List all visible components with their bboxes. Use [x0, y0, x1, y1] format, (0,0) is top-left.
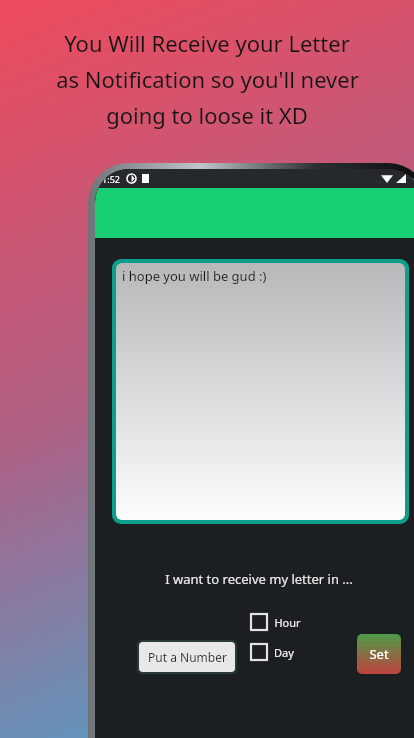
button[interactable]: i hope you will be gud :)	[116, 263, 405, 520]
button[interactable]	[95, 188, 414, 238]
button[interactable]: Day	[251, 644, 294, 660]
staticText: Put a Number	[148, 649, 227, 665]
staticText: I want to receive my letter in ...	[95, 570, 414, 588]
staticText: 1:52	[102, 173, 120, 185]
staticText: You Will Receive your Letter	[64, 28, 350, 58]
staticText: i hope you will be gud :)	[122, 267, 267, 285]
button[interactable]: Hour	[251, 614, 301, 630]
button[interactable]: Put a Number	[139, 642, 235, 672]
staticText: Set	[369, 645, 389, 663]
staticText: Hour	[274, 615, 301, 630]
staticText: going to loose it XD	[106, 100, 308, 130]
staticText: as Notification so you'll never	[56, 64, 359, 94]
staticText: Day	[274, 645, 294, 660]
button[interactable]: Set	[357, 634, 401, 674]
